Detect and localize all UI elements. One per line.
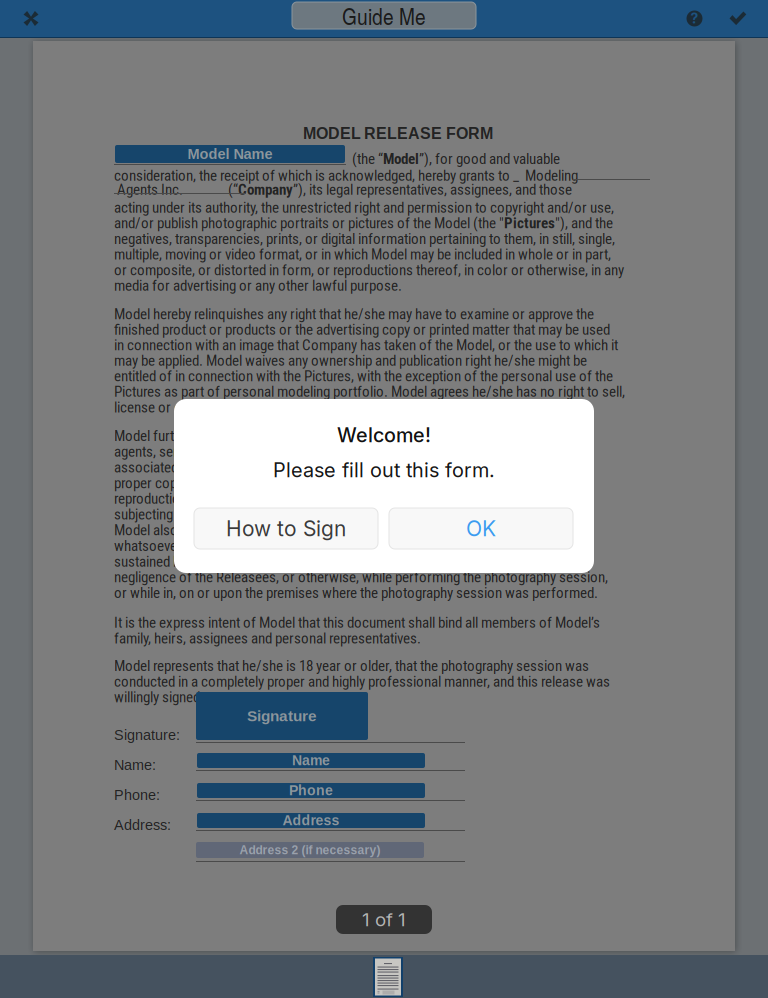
staticText: Name: — [114, 757, 156, 773]
staticText: willingly signed. — [114, 688, 204, 706]
staticText: or while in, on or upon the premises whe… — [114, 584, 598, 602]
staticText: ”), for good and valuable — [419, 150, 560, 168]
button[interactable]: How to Sign — [194, 508, 378, 549]
staticText: Pictures as part of personal modeling po… — [114, 383, 625, 401]
staticText: Model hereby relinquishes any right that… — [114, 305, 594, 323]
staticText: media for advertising or any other lawfu… — [114, 277, 402, 294]
staticText: Guide Me — [342, 0, 426, 31]
button[interactable]: Name — [197, 753, 425, 768]
staticText: whatsoever, including but not limited to… — [114, 537, 528, 555]
staticText: Name — [292, 753, 330, 768]
staticText: Address — [282, 813, 339, 828]
staticText: negligence of the Releasees, or otherwis… — [114, 568, 608, 586]
staticText: sustained by the Model, whether or not s… — [114, 553, 526, 570]
staticText: 1 of 1 — [362, 908, 406, 931]
staticText: associated with it from any claim for co… — [114, 458, 548, 476]
staticText: Pictures — [504, 214, 555, 232]
staticText: in connection with an image that Company… — [114, 336, 618, 354]
staticText: license or otherwise exploit the Picture… — [114, 398, 410, 416]
staticText: negatives, transparencies, prints, or di… — [114, 230, 615, 248]
staticText: "), and the — [555, 214, 613, 232]
staticText: Model also releases and discharges Compa… — [114, 521, 513, 539]
staticText: MODEL RELEASE FORM — [303, 125, 493, 142]
button[interactable]: OK — [389, 508, 573, 549]
staticText: Signature: — [114, 727, 180, 743]
staticText: conducted in a completely proper and hig… — [114, 673, 610, 690]
staticText: Welcome! — [337, 423, 431, 447]
staticText: Signature — [247, 707, 317, 724]
staticText: Address: — [114, 817, 171, 833]
staticText: ”), its legal representatives, assignees… — [293, 181, 572, 198]
button[interactable]: Page 1 thumbnail — [373, 957, 403, 997]
button[interactable]: Address 2 (if necessary) — [196, 842, 424, 858]
button[interactable]: Done — [714, 0, 762, 37]
button[interactable]: Close — [4, 0, 58, 37]
button[interactable]: Address — [197, 813, 425, 828]
staticText: finished product or products or the adve… — [114, 321, 610, 338]
staticText: entitled of in connection with the Pictu… — [114, 367, 613, 385]
staticText: acting under its authority, the unrestri… — [114, 199, 614, 216]
staticText: may be applied. Model waives any ownersh… — [114, 352, 587, 369]
button[interactable]: Signature — [196, 692, 368, 740]
staticText: Model Name — [187, 146, 272, 162]
staticText: family, heirs, assignees and personal re… — [114, 629, 421, 647]
button[interactable]: Model Name — [115, 145, 345, 163]
staticText: consideration, the receipt of which is a… — [114, 167, 578, 185]
staticText: Phone — [289, 783, 333, 798]
staticText: or composite, or distorted in form, or r… — [114, 261, 624, 279]
button[interactable]: Guide Me — [292, 2, 476, 29]
staticText: Address 2 (if necessary) — [239, 843, 380, 857]
staticText: agents, servants, employees, and all per… — [114, 443, 546, 460]
staticText: OK — [466, 516, 496, 541]
staticText: and/or publish photographic portraits or… — [114, 214, 504, 232]
staticText: ? — [690, 10, 698, 27]
staticText: It is the express intent of Model that t… — [114, 614, 600, 632]
staticText: (the “ — [352, 150, 383, 168]
staticText: reproductions, including but not limited… — [114, 490, 551, 508]
staticText: proper copyright or right of privacy, or… — [114, 474, 525, 492]
staticText: Model — [383, 150, 419, 168]
staticText: subjecting the Model to ridicule, scanda… — [114, 506, 510, 523]
staticText: Agents Inc. (“ — [114, 181, 238, 198]
staticText: Phone: — [114, 787, 160, 803]
button[interactable]: Phone — [197, 783, 425, 798]
staticText: How to Sign — [226, 516, 346, 541]
staticText: Company — [238, 181, 293, 198]
staticText: Model further releases and discharges Co… — [114, 427, 557, 445]
staticText: multiple, moving or video format, or in … — [114, 246, 611, 263]
staticText: Please fill out this form. — [273, 458, 495, 482]
button[interactable]: Help — [672, 0, 717, 37]
staticText: Model represents that he/she is 18 year … — [114, 657, 589, 675]
